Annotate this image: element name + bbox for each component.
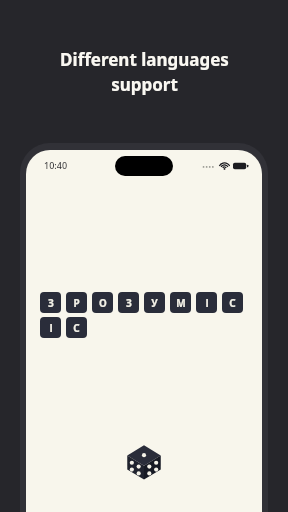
button[interactable]: З	[118, 292, 139, 313]
staticText: С	[229, 296, 236, 310]
staticText: У	[151, 296, 158, 310]
staticText: З	[126, 296, 132, 310]
staticText: О	[99, 296, 107, 310]
staticText: І	[49, 321, 53, 335]
button[interactable]: Shuffle letters	[122, 440, 166, 484]
button[interactable]: М	[170, 292, 191, 313]
staticText: Different languages	[60, 48, 229, 71]
staticText: support	[111, 73, 178, 96]
staticText: 10:40	[44, 159, 68, 171]
button[interactable]: І	[40, 317, 61, 338]
button[interactable]: С	[222, 292, 243, 313]
staticText: М	[176, 296, 186, 310]
staticText: С	[73, 321, 80, 335]
button[interactable]: О	[92, 292, 113, 313]
staticText: З	[48, 296, 54, 310]
button[interactable]: І	[196, 292, 217, 313]
staticText: Р	[73, 296, 80, 310]
button[interactable]: С	[66, 317, 87, 338]
button[interactable]: З	[40, 292, 61, 313]
button[interactable]: У	[144, 292, 165, 313]
button[interactable]: Р	[66, 292, 87, 313]
staticText: І	[205, 296, 209, 310]
